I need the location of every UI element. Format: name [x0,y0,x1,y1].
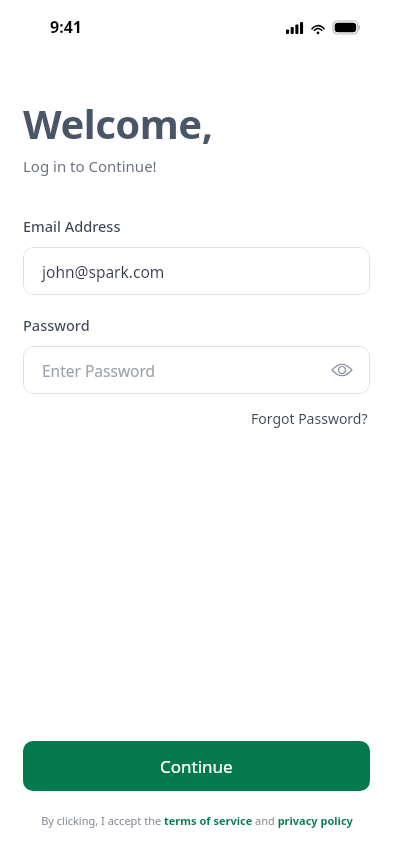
staticText: Log in to Continue! [23,156,157,176]
staticText: 9:41 [50,16,82,38]
staticText: Forgot Password? [251,409,368,428]
button[interactable]: Enter Password [23,346,370,394]
button[interactable]: Continue [23,741,370,791]
staticText: By clicking, I accept the terms of servi… [41,813,353,828]
staticText: john@spark.com [42,261,354,282]
button[interactable]: john@spark.com [23,247,370,295]
staticText: Continue [160,755,233,778]
staticText: Welcome, [23,96,213,150]
button[interactable]: Show password [330,358,354,382]
staticText: Password [23,315,90,335]
button[interactable]: Forgot Password? [249,406,370,431]
staticText: Email Address [23,216,121,236]
staticText: Enter Password [42,360,330,381]
button[interactable]: By clicking, I accept the terms of servi… [23,813,370,828]
